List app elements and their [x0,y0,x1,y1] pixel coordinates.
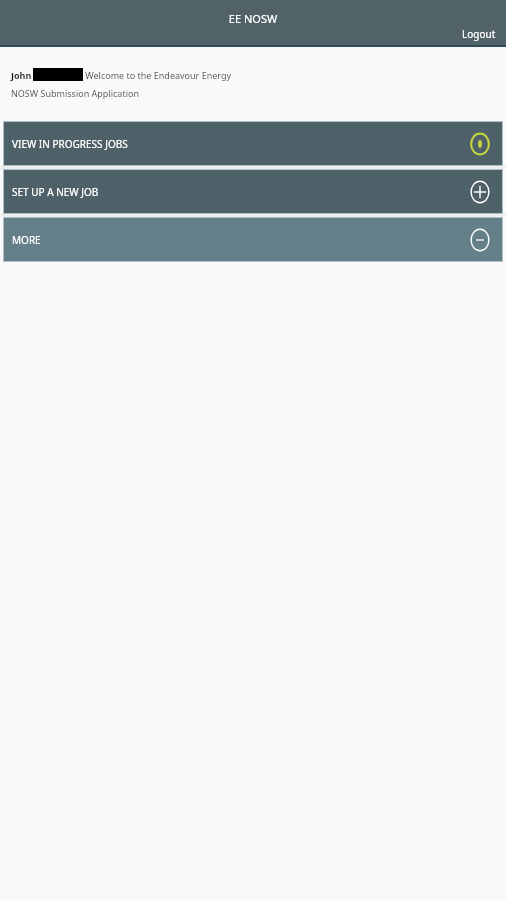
staticText: MORE [12,233,41,247]
staticText: VIEW IN PROGRESS JOBS [12,137,128,151]
staticText: Logout [462,27,496,41]
other: More [468,228,492,252]
other: Set up a new job [468,180,492,204]
staticText: SET UP A NEW JOB [12,185,99,199]
button[interactable]: MORE [4,218,502,261]
staticText: NOSW Submission Application [11,87,139,99]
button[interactable]: VIEW IN PROGRESS JOBS [4,122,502,165]
staticText: Welcome to the Endeavour Energy [83,69,232,81]
button[interactable]: Logout [462,27,506,45]
staticText: EE NOSW [0,11,506,26]
staticText: John [11,69,32,81]
other: View in progress jobs [468,132,492,156]
button[interactable]: SET UP A NEW JOB [4,170,502,213]
